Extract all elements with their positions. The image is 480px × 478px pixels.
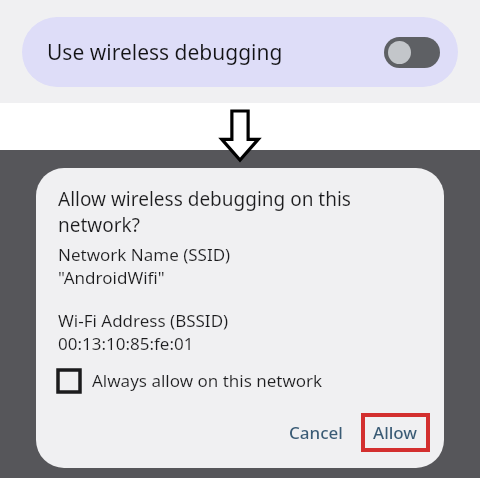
button[interactable]: Cancel	[275, 411, 357, 454]
staticText: "AndroidWifi"	[58, 266, 165, 289]
button[interactable]: Use wireless debugging	[22, 17, 458, 87]
staticText: Always allow on this network	[92, 369, 323, 392]
button[interactable]: Allow	[361, 413, 430, 452]
staticText: Allow wireless debugging on this network…	[58, 186, 351, 237]
staticText: Allow	[373, 421, 418, 444]
button[interactable]: Wireless debugging toggle	[384, 37, 440, 68]
staticText: Network Name (SSID)	[58, 243, 231, 266]
button[interactable]: Always allow on this network	[58, 367, 323, 394]
staticText: 00:13:10:85:fe:01	[58, 332, 194, 355]
staticText: Cancel	[289, 421, 343, 444]
staticText: Wi-Fi Address (BSSID)	[58, 309, 229, 332]
staticText: Use wireless debugging	[47, 38, 283, 67]
